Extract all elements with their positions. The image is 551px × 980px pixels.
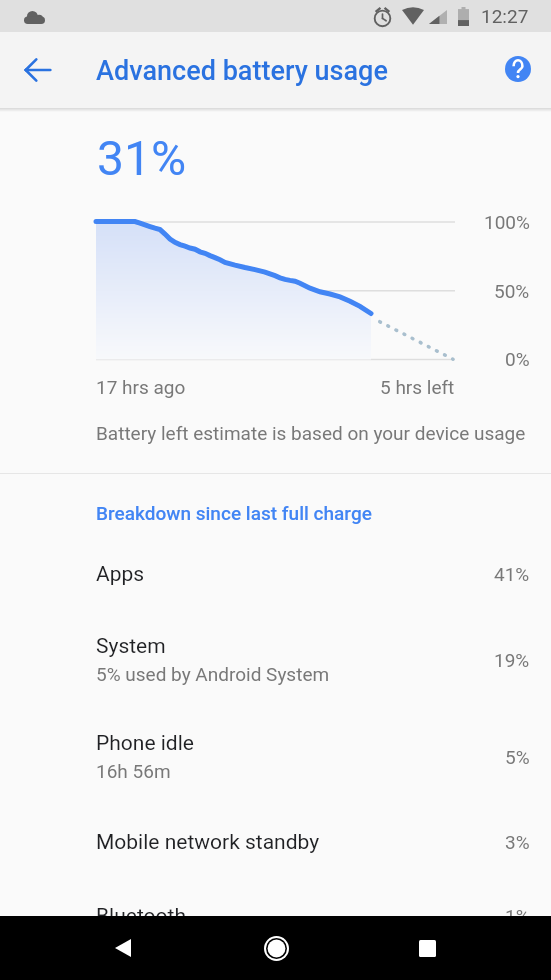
staticText: 5% used by Android System: [96, 663, 330, 685]
staticText: System: [96, 634, 166, 659]
staticText: 5%: [505, 746, 530, 768]
button[interactable]: Back: [99, 924, 147, 972]
staticText: 50%: [494, 280, 530, 302]
staticText: Battery left estimate is based on your d…: [96, 422, 526, 444]
button[interactable]: Recent apps: [403, 924, 451, 972]
button[interactable]: Breakdown since last full charge: [96, 502, 372, 524]
button[interactable]: System: [0, 611, 551, 708]
button[interactable]: Apps: [0, 537, 551, 611]
staticText: 17 hrs ago: [96, 376, 186, 398]
button[interactable]: Back: [14, 46, 62, 94]
staticText: 31%: [97, 130, 187, 186]
staticText: 0%: [505, 348, 530, 370]
staticText: 19%: [494, 649, 530, 671]
staticText: Advanced battery usage: [96, 55, 388, 87]
button[interactable]: Phone idle: [0, 708, 551, 805]
staticText: 3%: [505, 831, 530, 853]
button[interactable]: Home: [252, 924, 300, 972]
staticText: 5 hrs left: [380, 376, 455, 398]
staticText: 41%: [494, 563, 530, 585]
button[interactable]: Mobile network standby: [0, 805, 551, 879]
staticText: Apps: [96, 562, 145, 587]
button[interactable]: Bluetooth: [0, 879, 551, 953]
staticText: Mobile network standby: [96, 830, 320, 855]
staticText: Phone idle: [96, 731, 194, 756]
button[interactable]: Help: [494, 45, 542, 93]
staticText: 1%: [505, 905, 530, 927]
staticText: 12:27: [481, 5, 529, 27]
staticText: 100%: [484, 211, 530, 233]
staticText: Bluetooth: [96, 904, 186, 929]
staticText: 16h 56m: [96, 760, 171, 782]
